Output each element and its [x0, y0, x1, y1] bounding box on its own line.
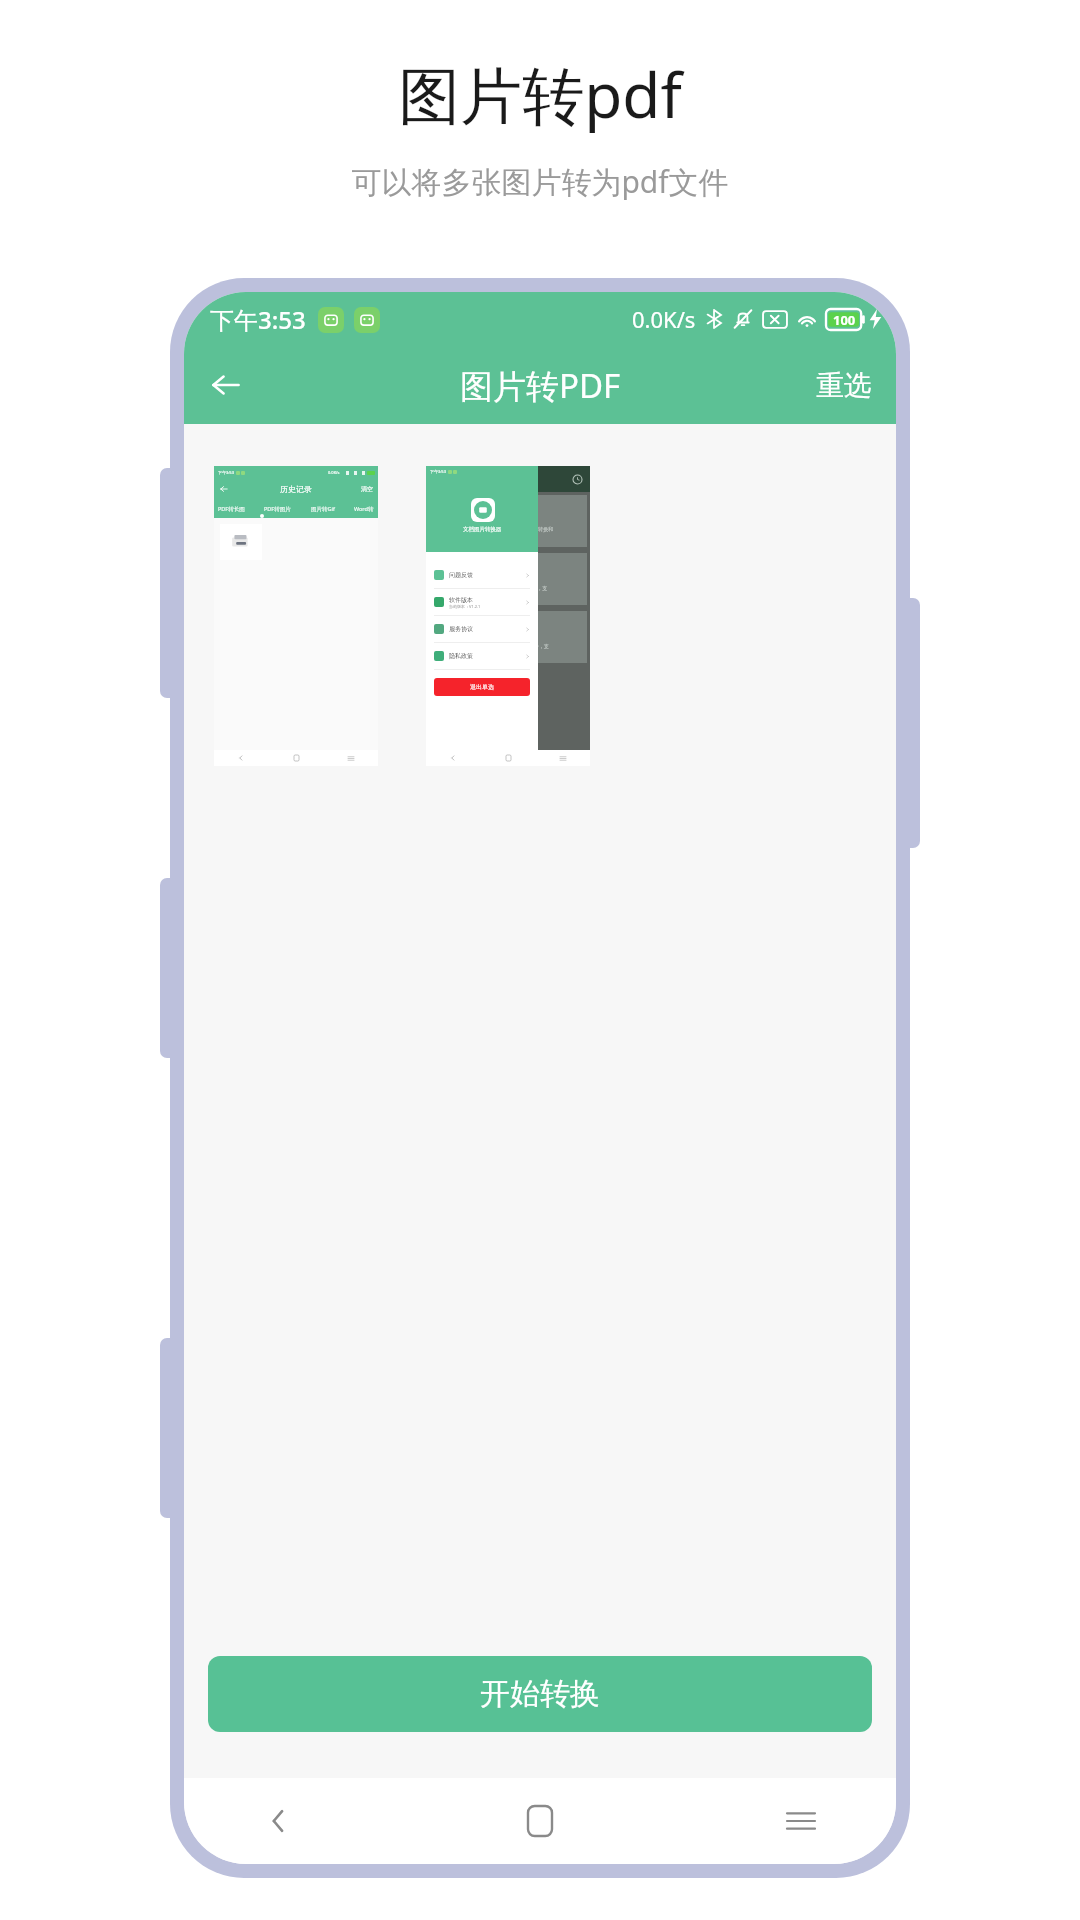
staticText: 软件版本: [449, 596, 473, 604]
staticText: 下午3:53: [430, 469, 446, 474]
button[interactable]: 下午3:53: [214, 466, 378, 766]
staticText: 隐私政策: [449, 652, 473, 660]
staticText: 可以将多张图片转为pdf文件: [351, 161, 729, 202]
staticText: 下午3:53: [210, 303, 306, 336]
button[interactable]: Menu: [770, 1790, 832, 1852]
button[interactable]: Back: [198, 357, 254, 413]
staticText: PDF转长图: [218, 505, 245, 513]
staticText: 服务协议: [449, 625, 473, 633]
staticText: PDF文件，支 docx: [518, 585, 548, 599]
staticText: 图片转pdf: [398, 52, 682, 137]
staticText: PDF: [518, 575, 532, 585]
staticText: 图片转PDF: [460, 363, 621, 408]
staticText: 清空: [361, 485, 373, 493]
button[interactable]: 重选: [810, 362, 878, 409]
button[interactable]: Home: [509, 1790, 571, 1852]
staticText: 图片转Gif: [311, 505, 335, 513]
staticText: 历史记录: [280, 484, 312, 494]
staticText: html文件，支 docx: [518, 643, 549, 657]
staticText: 重选: [816, 368, 872, 403]
staticText: 开始转换: [480, 1675, 600, 1713]
staticText: 100: [833, 311, 856, 329]
button[interactable]: 图片: [426, 466, 590, 766]
button[interactable]: 开始转换: [208, 1656, 872, 1732]
staticText: 0.0K/s: [632, 304, 696, 334]
staticText: 当前版本：V1.2.1: [449, 604, 481, 609]
staticText: 多张图片转换和 合并文字: [518, 526, 553, 540]
staticText: Word转: [354, 505, 374, 513]
staticText: 0.0K/s: [328, 470, 340, 475]
staticText: 退出单选: [470, 683, 494, 691]
staticText: 问题反馈: [449, 571, 473, 579]
button[interactable]: Back: [248, 1790, 310, 1852]
staticText: 文档图片转换器: [463, 526, 502, 533]
staticText: Html: [518, 633, 536, 643]
staticText: 下午3:53: [218, 470, 234, 475]
staticText: PDF转图片: [264, 505, 291, 513]
